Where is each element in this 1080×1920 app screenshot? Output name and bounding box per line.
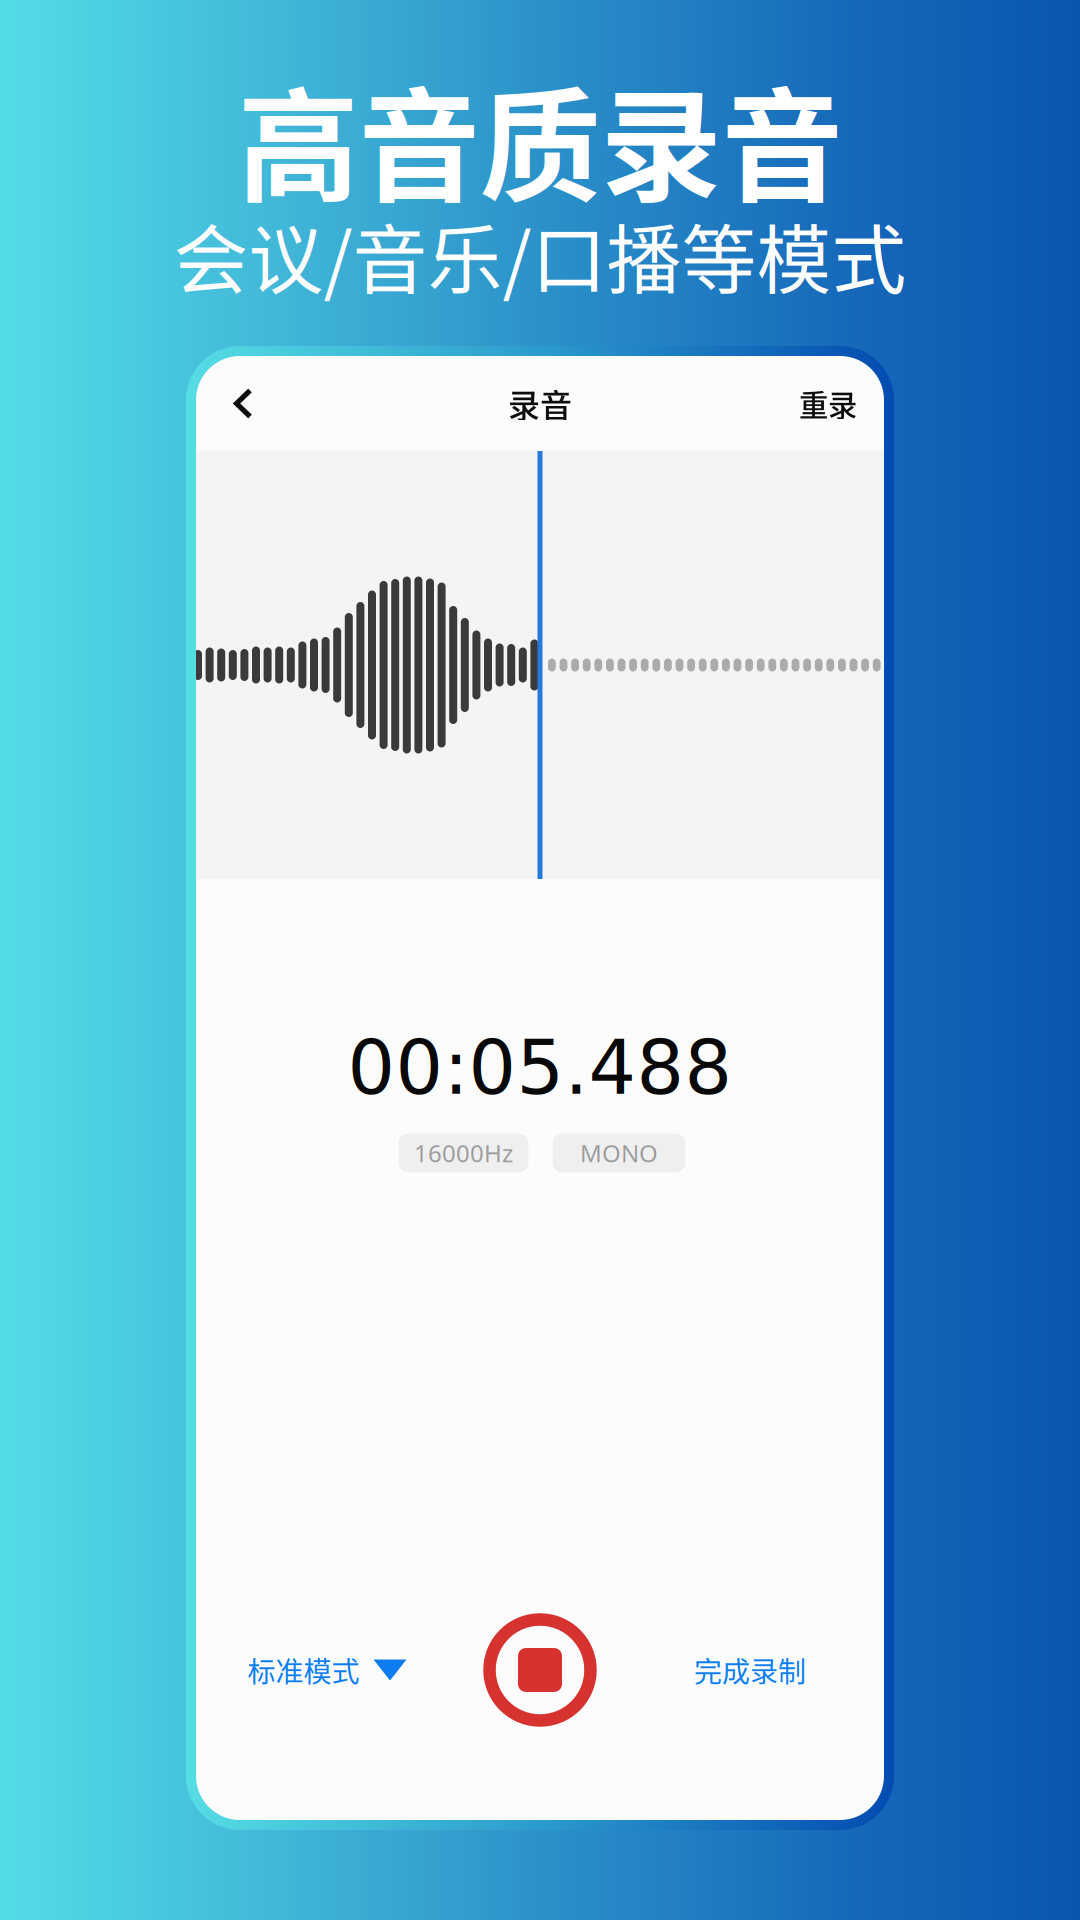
staticText: 会议/音乐/口播等模式 xyxy=(173,201,906,309)
staticText: 高音质录音 xyxy=(237,50,842,226)
button[interactable]: 重录 xyxy=(799,356,857,451)
staticText: 标准模式 xyxy=(247,1650,359,1690)
staticText: MONO xyxy=(580,1137,658,1169)
staticText: 录音 xyxy=(508,380,572,427)
staticText: 00:05.488 xyxy=(347,1024,732,1111)
button[interactable]: 完成录制 xyxy=(682,1628,818,1712)
button[interactable]: 标准模式 xyxy=(235,1628,418,1712)
staticText: 完成录制 xyxy=(694,1650,806,1690)
staticText: 重录 xyxy=(799,382,857,425)
button[interactable]: Back xyxy=(212,356,274,451)
staticText: 16000Hz xyxy=(414,1137,513,1169)
button[interactable]: Stop recording xyxy=(477,1607,603,1733)
